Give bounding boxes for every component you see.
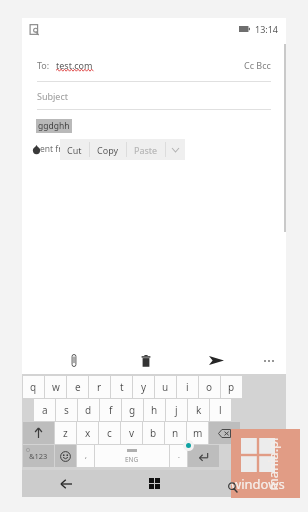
- button[interactable]: s: [56, 399, 77, 421]
- button[interactable]: t: [111, 376, 132, 398]
- staticText: l: [219, 403, 222, 417]
- button[interactable]: q: [23, 376, 44, 398]
- button[interactable]: Subject: [37, 82, 271, 109]
- staticText: z: [63, 426, 68, 440]
- staticText: test.com: [56, 59, 93, 71]
- staticText: To:: [37, 59, 50, 71]
- button[interactable]: Cursor control: [183, 440, 194, 451]
- button[interactable]: More options: [252, 347, 286, 374]
- staticText: t: [120, 380, 124, 394]
- button[interactable]: i: [177, 376, 198, 398]
- button[interactable]: x: [77, 422, 98, 444]
- button[interactable]: g: [122, 399, 143, 421]
- button[interactable]: v: [121, 422, 142, 444]
- button[interactable]: y: [133, 376, 154, 398]
- button[interactable]: e: [67, 376, 88, 398]
- staticText: x: [85, 426, 91, 440]
- button[interactable]: ,: [77, 445, 94, 467]
- button[interactable]: h: [144, 399, 165, 421]
- staticText: m: [193, 426, 203, 440]
- staticText: v: [129, 426, 135, 440]
- button[interactable]: b: [143, 422, 164, 444]
- button[interactable]: Emoji: [55, 445, 76, 467]
- staticText: u: [162, 380, 169, 394]
- button[interactable]: To:: [37, 56, 271, 74]
- staticText: ggdghh: [38, 120, 70, 132]
- button[interactable]: f: [100, 399, 121, 421]
- staticText: ENG: [125, 455, 139, 464]
- button[interactable]: k: [188, 399, 209, 421]
- button[interactable]: Enter: [188, 445, 219, 467]
- staticText: .: [178, 451, 180, 461]
- button[interactable]: Delete: [110, 347, 181, 374]
- staticText: j: [175, 403, 178, 417]
- button[interactable]: Start: [110, 470, 198, 497]
- staticText: k: [196, 403, 202, 417]
- staticText: f: [109, 403, 113, 417]
- button[interactable]: Copy: [90, 139, 126, 160]
- staticText: windows: [231, 475, 285, 493]
- staticText: d: [85, 403, 92, 417]
- button[interactable]: p: [221, 376, 242, 398]
- button[interactable]: Paste: [127, 139, 165, 160]
- button[interactable]: Search: [198, 470, 286, 497]
- staticText: mania.pl: [263, 437, 281, 490]
- button[interactable]: Cc Bcc: [244, 59, 271, 71]
- staticText: w: [52, 380, 60, 394]
- staticText: s: [64, 403, 69, 417]
- staticText: Copy: [97, 144, 119, 156]
- staticText: Cc Bcc: [244, 59, 271, 71]
- staticText: Paste: [134, 144, 158, 156]
- button[interactable]: r: [89, 376, 110, 398]
- button[interactable]: &123: [23, 445, 54, 467]
- staticText: b: [150, 426, 157, 440]
- button[interactable]: d: [78, 399, 99, 421]
- button[interactable]: .: [170, 445, 187, 467]
- staticText: o: [206, 380, 213, 394]
- button[interactable]: Send: [181, 347, 252, 374]
- staticText: a: [42, 403, 48, 417]
- button[interactable]: Attach: [38, 347, 110, 374]
- button[interactable]: m: [187, 422, 208, 444]
- staticText: ,: [85, 451, 87, 461]
- button[interactable]: j: [166, 399, 187, 421]
- button[interactable]: Back: [22, 470, 110, 497]
- button[interactable]: a: [34, 399, 55, 421]
- button[interactable]: Space: [95, 445, 169, 467]
- staticText: i: [186, 380, 189, 394]
- staticText: Subject: [37, 90, 69, 102]
- button[interactable]: More clipboard options: [166, 139, 185, 160]
- staticText: r: [97, 380, 102, 394]
- staticText: e: [75, 380, 81, 394]
- staticText: c: [107, 426, 112, 440]
- staticText: n: [172, 426, 179, 440]
- button[interactable]: n: [165, 422, 186, 444]
- button[interactable]: Backspace: [209, 422, 240, 444]
- staticText: q: [30, 380, 37, 394]
- button[interactable]: o: [199, 376, 220, 398]
- button[interactable]: u: [155, 376, 176, 398]
- staticText: h: [151, 403, 158, 417]
- staticText: g: [129, 403, 136, 417]
- staticText: p: [228, 380, 235, 394]
- staticText: y: [141, 380, 147, 394]
- staticText: ent fr: [40, 143, 62, 155]
- button[interactable]: c: [99, 422, 120, 444]
- staticText: 13:14: [255, 23, 279, 35]
- button[interactable]: l: [210, 399, 231, 421]
- staticText: &123: [29, 451, 48, 461]
- button[interactable]: Shift: [23, 422, 54, 444]
- staticText: Cut: [67, 144, 82, 156]
- button[interactable]: w: [45, 376, 66, 398]
- button[interactable]: Cut: [60, 139, 89, 160]
- button[interactable]: z: [55, 422, 76, 444]
